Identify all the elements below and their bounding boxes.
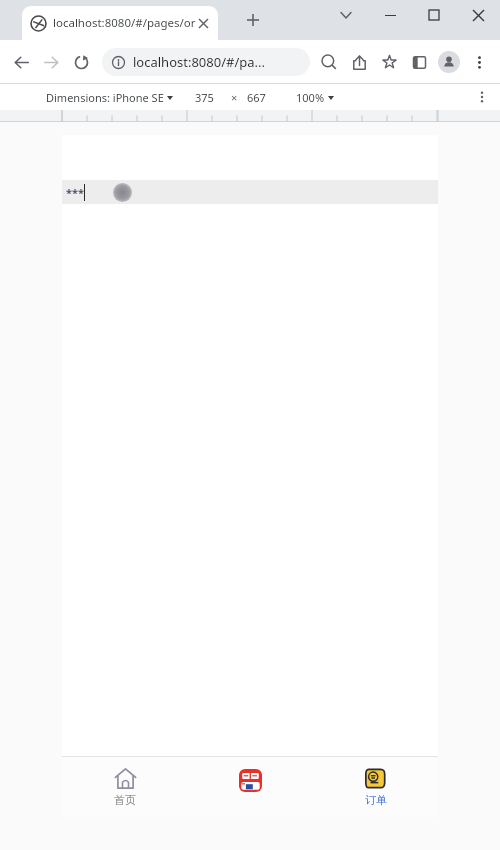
button[interactable]: Chrome menu — [464, 47, 494, 77]
button[interactable]: Close tab — [194, 14, 212, 32]
button[interactable]: localhost:8080/#/pages/or — [22, 6, 218, 40]
button[interactable]: Forward — [36, 47, 66, 77]
button[interactable]: Close window — [456, 0, 500, 30]
button[interactable]: Reload — [66, 47, 96, 77]
staticText: 100% — [296, 90, 325, 105]
button[interactable]: Dimensions: iPhone SE — [46, 90, 173, 105]
button[interactable]: Minimize — [368, 0, 412, 30]
staticText: 375 — [195, 90, 214, 105]
button[interactable]: localhost:8080/#/pa... — [112, 48, 304, 76]
button[interactable]: Share — [344, 47, 374, 77]
button[interactable]: Side panel — [404, 47, 434, 77]
staticText: localhost:8080/#/pa... — [133, 53, 265, 71]
button[interactable]: Bookmark — [374, 47, 404, 77]
button[interactable]: 100% — [296, 90, 334, 105]
staticText: × — [231, 90, 238, 105]
button[interactable]: App — [188, 757, 313, 817]
staticText: Dimensions: iPhone SE — [46, 90, 164, 105]
staticText: 订单 — [365, 793, 387, 807]
button[interactable]: Zoom — [314, 47, 344, 77]
button[interactable]: 订单 — [313, 757, 438, 817]
staticText: *** — [66, 185, 84, 200]
staticText: 首页 — [114, 793, 136, 807]
button[interactable]: Profile — [434, 47, 464, 77]
button[interactable]: Tab search — [324, 0, 368, 30]
button[interactable]: 首页 — [62, 757, 188, 817]
button[interactable]: Back — [6, 47, 36, 77]
button[interactable]: More options — [472, 87, 492, 107]
staticText: localhost:8080/#/pages/or — [53, 15, 196, 31]
button[interactable]: Maximize — [412, 0, 456, 30]
staticText: 667 — [247, 90, 266, 105]
button[interactable]: New tab — [240, 7, 266, 33]
